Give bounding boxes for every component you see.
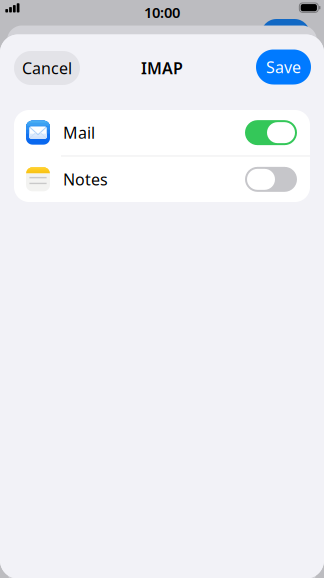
staticText: IMAP [141, 57, 183, 79]
staticText: Notes [63, 169, 108, 190]
button[interactable]: Cancel [14, 51, 80, 85]
staticText: Mail [63, 122, 95, 143]
button[interactable]: Save [256, 49, 311, 84]
button[interactable]: Notes [14, 156, 310, 202]
staticText: Save [266, 56, 301, 78]
button[interactable]: Mail [14, 110, 310, 156]
staticText: 10:00 [144, 3, 180, 22]
staticText: Cancel [22, 57, 72, 79]
